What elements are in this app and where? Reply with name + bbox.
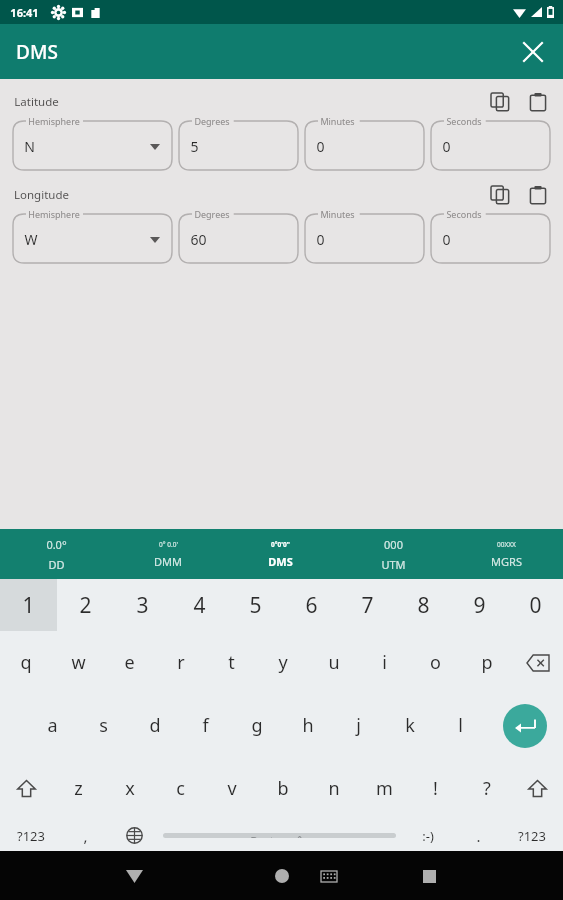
button[interactable]: Shift bbox=[0, 757, 52, 820]
button[interactable]: Copy Longitude bbox=[483, 182, 517, 208]
staticText: UTM bbox=[381, 557, 406, 572]
staticText: 0 bbox=[442, 137, 451, 156]
button[interactable]: h bbox=[282, 694, 333, 757]
staticText: ? bbox=[483, 776, 491, 801]
button[interactable]: s bbox=[78, 694, 129, 757]
button[interactable]: Minutes bbox=[305, 115, 424, 170]
button[interactable]: Paste Latitude bbox=[521, 89, 555, 115]
button[interactable]: Seconds bbox=[431, 208, 550, 263]
staticText: N bbox=[24, 137, 35, 156]
button[interactable]: 1 bbox=[0, 579, 57, 631]
button[interactable]: Enter bbox=[486, 694, 563, 757]
staticText: Longitude bbox=[14, 187, 69, 203]
button[interactable]: Português bbox=[163, 833, 396, 838]
button[interactable]: z bbox=[52, 757, 104, 820]
staticText: s bbox=[99, 713, 108, 738]
staticText: Português bbox=[250, 833, 309, 838]
button[interactable]: 00XXX bbox=[450, 529, 563, 579]
button[interactable]: 000 bbox=[337, 529, 450, 579]
button[interactable]: ! bbox=[410, 757, 461, 820]
button[interactable]: 9 bbox=[451, 579, 507, 631]
button[interactable]: f bbox=[180, 694, 231, 757]
button[interactable]: Backspace bbox=[512, 631, 563, 694]
staticText: ! bbox=[433, 776, 438, 801]
button[interactable]: Seconds bbox=[431, 115, 550, 170]
button[interactable]: k bbox=[384, 694, 435, 757]
staticText: u bbox=[328, 650, 340, 675]
button[interactable]: b bbox=[257, 757, 308, 820]
button[interactable]: Hemisphere bbox=[13, 208, 172, 263]
staticText: d bbox=[149, 713, 161, 738]
button[interactable]: q bbox=[0, 631, 52, 694]
staticText: 0 bbox=[442, 230, 451, 249]
button[interactable]: t bbox=[206, 631, 257, 694]
button[interactable]: Copy Latitude bbox=[483, 89, 517, 115]
button[interactable]: 0°0'0" bbox=[224, 529, 337, 579]
button[interactable]: 0.0° bbox=[0, 529, 112, 579]
button[interactable]: u bbox=[308, 631, 359, 694]
button[interactable]: x bbox=[104, 757, 155, 820]
button[interactable]: d bbox=[129, 694, 180, 757]
button[interactable]: Minutes bbox=[305, 208, 424, 263]
staticText: DMS bbox=[268, 554, 293, 569]
button[interactable]: r bbox=[155, 631, 206, 694]
button[interactable]: n bbox=[308, 757, 359, 820]
button[interactable]: ? bbox=[461, 757, 512, 820]
button[interactable]: 5 bbox=[227, 579, 283, 631]
button[interactable]: 0° 0.0' bbox=[112, 529, 224, 579]
staticText: a bbox=[47, 713, 58, 738]
staticText: z bbox=[74, 776, 83, 801]
button[interactable]: l bbox=[435, 694, 486, 757]
button[interactable]: 8 bbox=[395, 579, 451, 631]
button[interactable]: i bbox=[359, 631, 410, 694]
button[interactable]: Degrees bbox=[179, 115, 298, 170]
button[interactable]: :-) bbox=[400, 820, 456, 851]
button[interactable]: 4 bbox=[171, 579, 227, 631]
button[interactable]: Back bbox=[110, 852, 158, 900]
staticText: g bbox=[251, 713, 263, 738]
staticText: y bbox=[278, 650, 288, 675]
button[interactable]: Close bbox=[511, 30, 555, 74]
button[interactable]: g bbox=[231, 694, 282, 757]
staticText: Minutes bbox=[320, 115, 355, 127]
button[interactable]: Degrees bbox=[179, 208, 298, 263]
staticText: 1 bbox=[22, 591, 35, 620]
button[interactable]: w bbox=[52, 631, 104, 694]
button[interactable]: Paste Longitude bbox=[521, 182, 555, 208]
button[interactable]: ?123 bbox=[0, 820, 61, 851]
button[interactable]: Hemisphere bbox=[13, 115, 172, 170]
button[interactable]: ?123 bbox=[501, 820, 563, 851]
button[interactable]: 2 bbox=[57, 579, 114, 631]
staticText: x bbox=[125, 776, 135, 801]
staticText: 0 bbox=[529, 591, 542, 620]
button[interactable]: 3 bbox=[114, 579, 171, 631]
button[interactable]: 6 bbox=[283, 579, 339, 631]
button[interactable]: j bbox=[333, 694, 384, 757]
button[interactable]: e bbox=[104, 631, 155, 694]
button[interactable]: Shift bbox=[512, 757, 563, 820]
button[interactable]: p bbox=[461, 631, 512, 694]
button[interactable]: 7 bbox=[339, 579, 395, 631]
button[interactable]: 0 bbox=[507, 579, 563, 631]
button[interactable]: Recents bbox=[405, 852, 453, 900]
staticText: DD bbox=[48, 557, 65, 572]
button[interactable]: , bbox=[61, 820, 109, 851]
button[interactable]: Keyboard bbox=[309, 856, 349, 896]
button[interactable]: v bbox=[206, 757, 257, 820]
button[interactable]: a bbox=[27, 694, 78, 757]
staticText: 0.0° bbox=[46, 537, 67, 552]
staticText: Degrees bbox=[194, 115, 230, 127]
staticText: 0 bbox=[316, 230, 325, 249]
button[interactable]: o bbox=[410, 631, 461, 694]
staticText: 60 bbox=[190, 230, 207, 249]
button[interactable]: c bbox=[155, 757, 206, 820]
button[interactable]: Home bbox=[258, 852, 306, 900]
button[interactable]: y bbox=[257, 631, 308, 694]
staticText: f bbox=[202, 713, 209, 738]
button[interactable]: . bbox=[456, 820, 501, 851]
button[interactable]: Change language bbox=[109, 820, 159, 851]
staticText: ?123 bbox=[518, 827, 546, 845]
button[interactable]: m bbox=[359, 757, 410, 820]
staticText: 4 bbox=[193, 591, 206, 620]
staticText: i bbox=[382, 650, 387, 675]
